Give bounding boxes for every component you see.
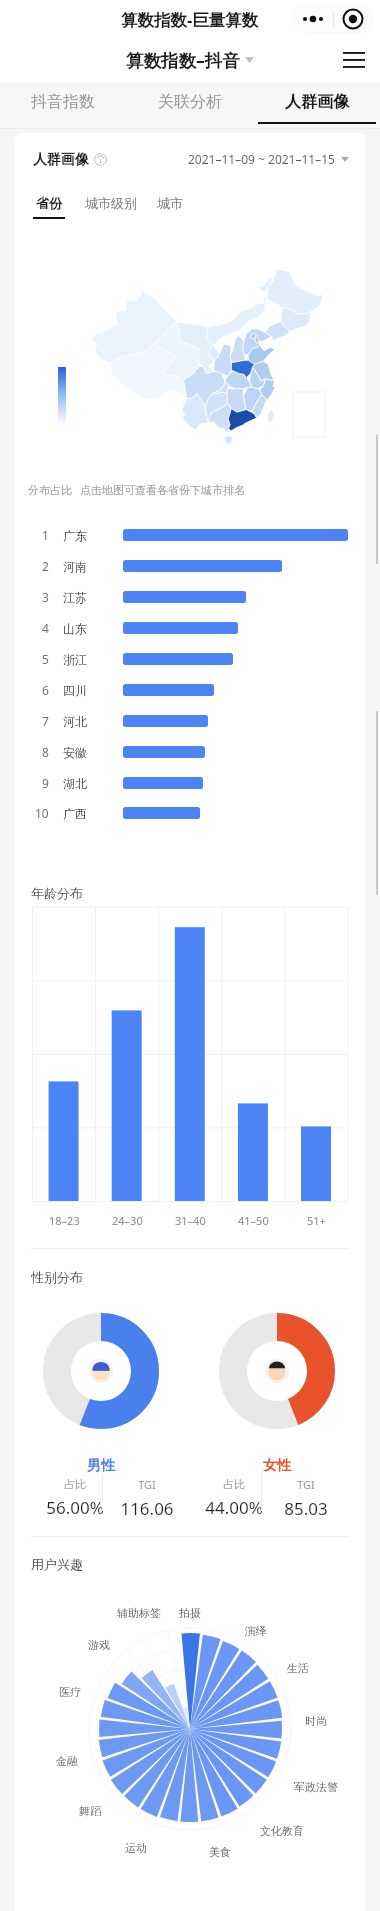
staticText: 人群画像 bbox=[285, 92, 349, 112]
button[interactable]: More options bbox=[293, 4, 373, 34]
staticText: 116.06 bbox=[120, 1497, 174, 1520]
staticText: 10 bbox=[35, 805, 49, 821]
button[interactable]: 算数指数–抖音 bbox=[126, 48, 254, 72]
button[interactable]: 人群画像 bbox=[253, 82, 380, 128]
button[interactable]: 8 bbox=[15, 737, 365, 767]
staticText: 占比 bbox=[64, 1477, 86, 1491]
button[interactable]: 2 bbox=[15, 551, 365, 581]
button[interactable]: 城市级别 bbox=[85, 195, 137, 217]
staticText: 关联分析 bbox=[158, 92, 222, 112]
staticText: 抖音指数 bbox=[31, 92, 95, 112]
staticText: 占比 bbox=[223, 1477, 245, 1491]
staticText: 广西 bbox=[63, 806, 87, 821]
button[interactable]: 3 bbox=[15, 582, 365, 612]
staticText: 2 bbox=[42, 558, 49, 574]
staticText: 河南 bbox=[63, 559, 87, 574]
button[interactable]: 关联分析 bbox=[126, 82, 253, 128]
staticText: TGI bbox=[138, 1477, 156, 1492]
staticText: 安徽 bbox=[63, 745, 87, 760]
staticText: 广东 bbox=[63, 528, 87, 543]
button[interactable]: 10 bbox=[15, 798, 365, 828]
staticText: 年龄分布 bbox=[31, 885, 83, 901]
staticText: 分布占比 bbox=[28, 483, 72, 497]
staticText: 9 bbox=[42, 775, 49, 791]
staticText: 金融 bbox=[56, 1754, 78, 1768]
staticText: 2021–11–09 ~ 2021–11–15 bbox=[188, 151, 335, 167]
staticText: 城市级别 bbox=[85, 195, 137, 211]
staticText: 生活 bbox=[287, 1661, 309, 1675]
staticText: 6 bbox=[42, 682, 49, 698]
button[interactable]: 6 bbox=[15, 675, 365, 705]
staticText: 56.00% bbox=[46, 1496, 104, 1519]
staticText: 浙江 bbox=[63, 652, 87, 667]
staticText: 点击地图可查看各省份下城市排名 bbox=[80, 483, 245, 497]
staticText: 男性 bbox=[87, 1457, 115, 1475]
staticText: 女性 bbox=[263, 1457, 291, 1475]
staticText: 44.00% bbox=[205, 1496, 263, 1519]
button[interactable]: 抖音指数 bbox=[0, 82, 126, 128]
staticText: 运动 bbox=[125, 1841, 147, 1855]
button[interactable]: 7 bbox=[15, 706, 365, 736]
staticText: 用户兴趣 bbox=[31, 1556, 83, 1572]
staticText: 4 bbox=[42, 620, 49, 636]
button[interactable]: 省份 bbox=[33, 195, 65, 219]
staticText: 算数指数–抖音 bbox=[126, 48, 240, 72]
staticText: 算数指数-巨量算数 bbox=[121, 8, 259, 31]
staticText: 省份 bbox=[36, 195, 62, 211]
staticText: 文化教育 bbox=[260, 1824, 304, 1838]
button[interactable]: 城市 bbox=[157, 195, 183, 217]
staticText: 1 bbox=[42, 527, 49, 543]
staticText: 拍摄 bbox=[179, 1606, 201, 1620]
staticText: 军政法警 bbox=[294, 1780, 338, 1794]
staticText: 51+ bbox=[307, 1213, 326, 1228]
staticText: 河北 bbox=[63, 714, 87, 729]
staticText: 湖北 bbox=[63, 776, 87, 791]
staticText: 演绎 bbox=[245, 1624, 267, 1638]
staticText: 5 bbox=[42, 651, 49, 667]
button[interactable]: 9 bbox=[15, 768, 365, 798]
button[interactable]: Menu bbox=[343, 52, 365, 68]
staticText: TGI bbox=[297, 1477, 315, 1492]
button[interactable]: 1 bbox=[15, 520, 365, 550]
button[interactable]: 5 bbox=[15, 644, 365, 674]
staticText: 山东 bbox=[63, 621, 87, 636]
staticText: 性别分布 bbox=[31, 1269, 83, 1285]
staticText: 游戏 bbox=[88, 1638, 110, 1652]
staticText: 四川 bbox=[63, 683, 87, 698]
staticText: 舞蹈 bbox=[79, 1804, 101, 1818]
staticText: 7 bbox=[42, 713, 49, 729]
staticText: 城市 bbox=[157, 195, 183, 211]
staticText: 人群画像 bbox=[33, 151, 89, 167]
staticText: 辅助标签 bbox=[117, 1606, 161, 1620]
staticText: 江苏 bbox=[63, 590, 87, 605]
staticText: 18–23 bbox=[49, 1213, 80, 1228]
staticText: 美食 bbox=[209, 1845, 231, 1859]
staticText: 医疗 bbox=[59, 1685, 81, 1699]
staticText: 时尚 bbox=[305, 1714, 327, 1728]
button[interactable]: 4 bbox=[15, 613, 365, 643]
button[interactable]: 2021–11–09 ~ 2021–11–15 bbox=[188, 151, 349, 167]
staticText: 24–30 bbox=[112, 1213, 143, 1228]
staticText: 41–50 bbox=[238, 1213, 269, 1228]
staticText: 31–40 bbox=[175, 1213, 206, 1228]
staticText: 3 bbox=[42, 589, 49, 605]
staticText: 8 bbox=[42, 744, 49, 760]
staticText: 85.03 bbox=[284, 1497, 328, 1520]
button[interactable]: Help bbox=[94, 153, 107, 166]
